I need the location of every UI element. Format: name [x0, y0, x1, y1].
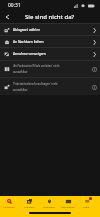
- staticText: 'An Packstation/Filiale umleiten' nicht …: [13, 64, 89, 74]
- staticText: Packstation: [61, 205, 75, 208]
- staticText: Verfolgen: [3, 205, 15, 208]
- button[interactable]: 'An Packstation/Filiale umleiten' nicht …: [0, 61, 100, 77]
- staticText: 00:31: [8, 2, 21, 9]
- staticText: Annahme verweigern: [13, 52, 89, 56]
- staticText: Ablageort wählen: [13, 28, 89, 32]
- button[interactable]: Ablageort wählen: [0, 24, 100, 35]
- button[interactable]: Mehr: [77, 196, 96, 210]
- staticText: Sie sind nicht da?: [25, 13, 75, 21]
- button[interactable]: An Nachbarn liefern: [0, 36, 100, 47]
- staticText: Mehr: [83, 205, 90, 208]
- staticText: Standorte: [43, 205, 55, 208]
- button[interactable]: Annahme verweigern: [0, 48, 100, 60]
- button[interactable]: Standorte: [39, 196, 58, 210]
- button[interactable]: Verfolgen: [0, 196, 19, 210]
- staticText: 'Paketmitnahme/beauftragen' nicht auswäh…: [13, 82, 89, 92]
- button[interactable]: Zurück: [0, 11, 14, 23]
- staticText: An Nachbarn liefern: [13, 40, 89, 44]
- staticText: Postfach: [24, 205, 35, 208]
- button[interactable]: Postfach: [19, 196, 39, 210]
- button[interactable]: Packstation: [58, 196, 77, 210]
- button[interactable]: 'Paketmitnahme/beauftragen' nicht auswäh…: [0, 78, 100, 95]
